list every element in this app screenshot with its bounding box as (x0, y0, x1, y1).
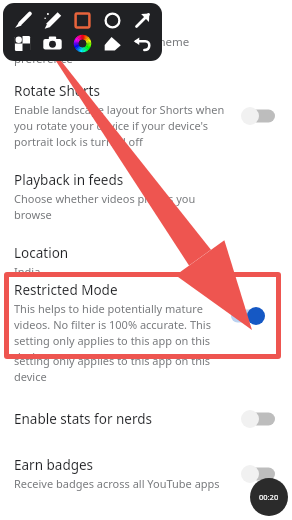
button[interactable]: Rectangle (71, 9, 94, 32)
button[interactable]: Color (71, 32, 94, 55)
button[interactable]: Earn badges (0, 456, 292, 491)
button[interactable]: Undo (131, 32, 154, 55)
button[interactable]: Appearance (0, 14, 292, 66)
button[interactable]: Enable stats for nerds (0, 410, 292, 428)
staticText: Location (14, 244, 69, 262)
button[interactable]: Toggle off (241, 107, 275, 125)
staticText: Choose your light or dark theme preferen… (14, 34, 230, 66)
button[interactable]: Toggle off (241, 410, 275, 428)
staticText: Receive badges across all YouTube apps (14, 476, 220, 491)
staticText: Earn badges (14, 456, 94, 474)
staticText: This helps to hide potentially mature vi… (14, 321, 230, 384)
button[interactable]: Oval (101, 9, 124, 32)
button[interactable]: Playback in feeds (0, 171, 292, 222)
staticText: Enable stats for nerds (14, 410, 153, 428)
button[interactable]: Blur (11, 32, 34, 55)
button[interactable]: Toggle off (241, 465, 275, 483)
button[interactable]: Restricted Mode (0, 301, 292, 384)
button[interactable]: Recording timer (250, 478, 288, 516)
staticText: 00:20 (259, 492, 279, 502)
staticText: Choose whether videos play as you browse (14, 191, 230, 222)
staticText: India (14, 264, 41, 279)
button[interactable]: Screenshot (41, 32, 64, 55)
staticText: Enable landscape layout for Shorts when … (14, 102, 230, 149)
button[interactable]: Highlighter (41, 9, 64, 32)
staticText: Appearance (14, 14, 90, 32)
staticText: This helps to hide potentially mature vi… (14, 301, 220, 354)
button[interactable]: Eraser (101, 32, 124, 55)
staticText: Restricted Mode (14, 281, 118, 299)
button[interactable]: Toggle on (231, 307, 265, 325)
button[interactable]: Arrow (131, 9, 154, 32)
staticText: Playback in feeds (14, 171, 124, 189)
button[interactable]: Pen (11, 9, 34, 32)
button[interactable]: Location (0, 244, 292, 279)
staticText: Restricted Mode (14, 301, 118, 319)
button[interactable]: Rotate Shorts (0, 82, 292, 149)
staticText: Rotate Shorts (14, 82, 100, 100)
